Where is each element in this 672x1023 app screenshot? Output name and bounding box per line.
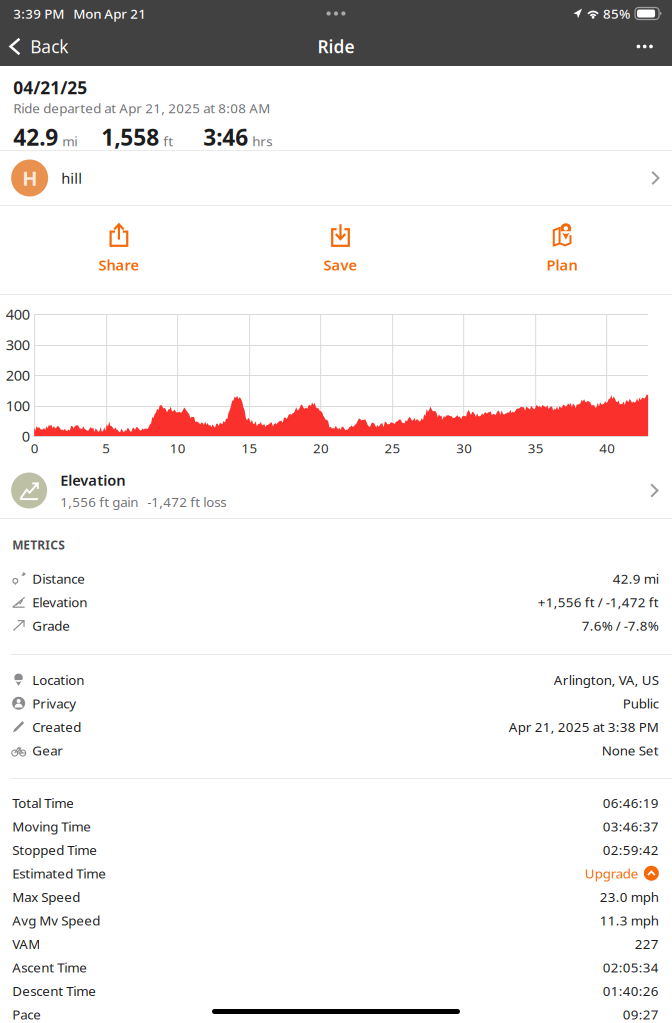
staticText: 3:39 PM [13,5,64,22]
staticText: Total Time [12,794,74,812]
staticText: 200 [6,365,30,385]
button[interactable]: More options [623,33,672,60]
staticText: 23.0 mph [600,888,659,906]
staticText: 09:27 [623,1005,659,1023]
staticText: Ride departed at Apr 21, 2025 at 8:08 AM [13,99,270,117]
staticText: 100 [6,396,30,415]
button[interactable]: Share [8,206,230,294]
staticText: 03:46:37 [603,817,659,835]
staticText: 7.6% / -7.8% [582,617,659,634]
staticText: Distance [32,570,85,587]
staticText: Grade [32,617,70,634]
staticText: 15 [241,439,257,457]
staticText: VAM [12,935,40,953]
staticText: Estimated Time [12,864,106,882]
staticText: ft [163,132,173,150]
staticText: Apr 21, 2025 at 3:38 PM [509,718,659,736]
staticText: 02:05:34 [603,958,659,976]
staticText: 40 [599,439,615,457]
staticText: 42.9 mi [613,570,659,587]
staticText: 227 [635,935,659,953]
staticText: Descent Time [12,982,96,1000]
staticText: Created [32,718,81,736]
staticText: 42.9 [13,122,58,152]
staticText: 10 [170,439,186,457]
staticText: 1,558 [101,122,159,152]
staticText: Public [623,694,659,712]
button[interactable]: Plan [451,206,672,294]
staticText: 85% [603,5,630,22]
staticText: 0 [22,426,30,446]
staticText: -1,472 ft loss [147,493,226,511]
staticText: Ascent Time [12,958,87,976]
staticText: mi [62,132,77,150]
staticText: 3:46 [203,122,248,152]
staticText: Plan [547,255,578,274]
button[interactable]: Save [230,206,451,294]
staticText: Mon Apr 21 [73,5,146,22]
staticText: Privacy [32,694,76,712]
staticText: Avg Mv Speed [12,911,100,929]
staticText: 25 [385,439,401,457]
staticText: Save [323,255,357,274]
staticText: Max Speed [12,888,80,906]
staticText: Back [30,35,68,58]
staticText: 1,556 ft gain [60,493,138,511]
staticText: H [22,165,37,191]
staticText: METRICS [12,537,65,553]
staticText: Moving Time [12,817,91,835]
button[interactable]: Back [0,27,68,66]
staticText: 04/21/25 [13,76,87,99]
staticText: Location [32,671,84,689]
staticText: 11.3 mph [600,911,659,929]
staticText: Upgrade [585,864,639,882]
staticText: 20 [313,439,329,457]
button[interactable]: Elevation [0,463,672,518]
staticText: 02:59:42 [603,841,659,859]
staticText: Arlington, VA, US [554,671,659,689]
staticText: Elevation [32,593,87,611]
staticText: Pace [12,1005,41,1023]
staticText: 5 [102,439,110,457]
staticText: Share [98,255,139,274]
staticText: Ride [317,35,354,58]
button[interactable]: H [0,151,672,205]
staticText: 0 [31,439,39,457]
staticText: None Set [602,741,659,759]
staticText: +1,556 ft / -1,472 ft [538,593,659,611]
button[interactable]: Upgrade [585,864,659,882]
staticText: 30 [456,439,472,457]
staticText: hrs [252,132,272,150]
staticText: 01:40:26 [603,982,659,1000]
staticText: hill [61,168,82,188]
staticText: 400 [6,304,30,324]
staticText: Stopped Time [12,841,97,859]
staticText: 06:46:19 [603,794,659,812]
staticText: Gear [32,741,63,759]
staticText: 300 [6,335,30,354]
staticText: Elevation [60,470,125,490]
staticText: 35 [528,439,544,457]
